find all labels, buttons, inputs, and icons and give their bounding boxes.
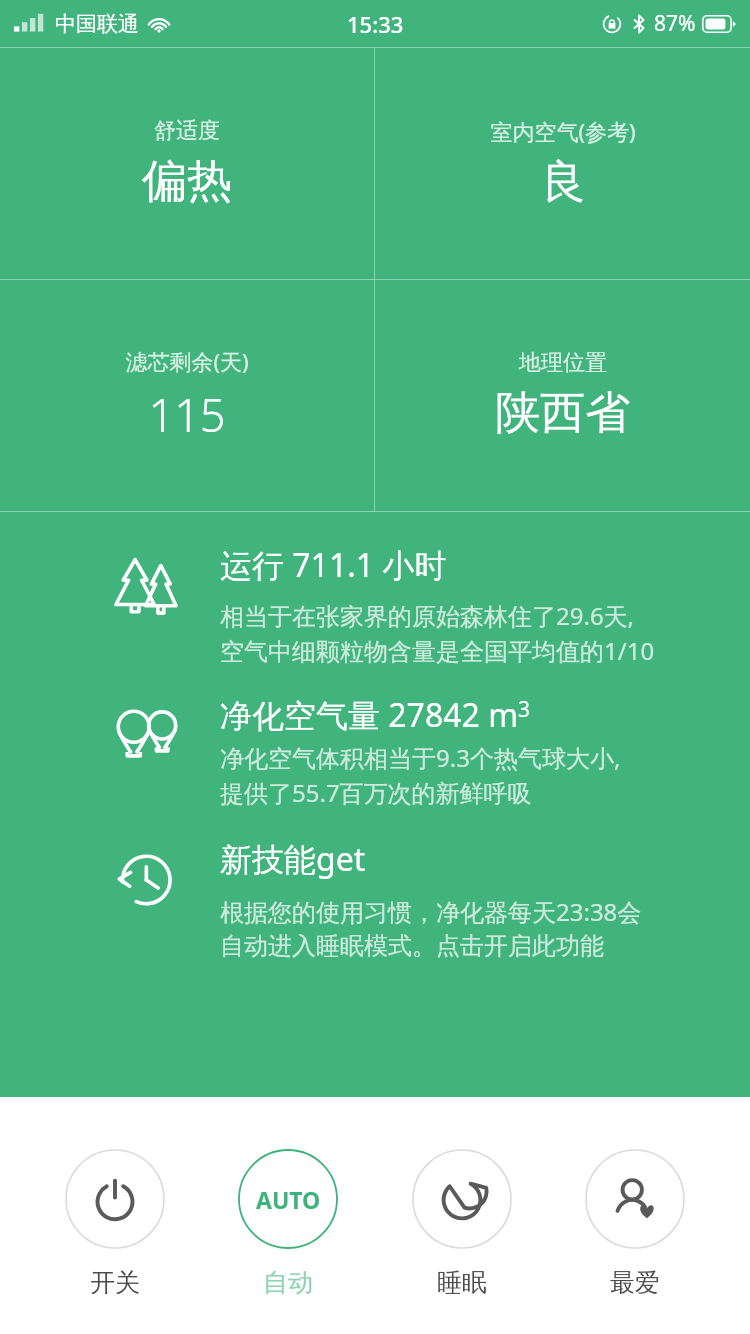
- staticText: 相当于在张家界的原始森林住了29.6天, 空气中细颗粒物含量是全国平均值的1/1…: [220, 599, 655, 667]
- other: Air volume: [112, 703, 178, 769]
- button[interactable]: History: [0, 837, 750, 962]
- other: 最爱: [585, 1149, 685, 1249]
- staticText: 最爱: [610, 1267, 660, 1298]
- staticText: 115: [148, 384, 226, 445]
- staticText: 87%: [654, 9, 696, 38]
- staticText: 陕西省: [495, 385, 630, 442]
- staticText: 睡眠: [437, 1267, 487, 1298]
- staticText: 室内空气(参考): [490, 116, 636, 146]
- staticText: 运行 711.1 小时: [220, 543, 447, 587]
- staticText: 开关: [90, 1267, 140, 1298]
- staticText: 自动: [263, 1267, 313, 1298]
- staticText: 中国联通: [55, 11, 139, 37]
- button[interactable]: Air volume: [0, 693, 750, 809]
- staticText: 净化空气体积相当于9.3个热气球大小, 提供了55.7百万次的新鲜呼吸: [220, 741, 621, 809]
- other: History: [112, 847, 178, 913]
- staticText: 净化空气量 27842 m3: [220, 693, 531, 737]
- staticText: 15:33: [347, 9, 404, 39]
- button[interactable]: 最爱: [577, 1149, 693, 1298]
- button[interactable]: 滤芯剩余(天): [0, 280, 374, 511]
- staticText: 舒适度: [154, 117, 220, 145]
- staticText: 滤芯剩余(天): [125, 346, 249, 376]
- staticText: 良: [541, 154, 586, 211]
- staticText: 偏热: [142, 153, 232, 210]
- button[interactable]: 地理位置: [375, 280, 750, 511]
- other: 睡眠: [412, 1149, 512, 1249]
- staticText: AUTO: [256, 1184, 321, 1215]
- button[interactable]: 开关: [57, 1149, 173, 1298]
- staticText: 新技能get: [220, 837, 366, 881]
- button[interactable]: 睡眠: [404, 1149, 520, 1298]
- button[interactable]: 室内空气(参考): [375, 48, 750, 279]
- other: Forest: [112, 553, 178, 619]
- staticText: 根据您的使用习惯，净化器每天23:38会 自动进入睡眠模式。点击开启此功能: [220, 895, 642, 962]
- staticText: 地理位置: [519, 349, 607, 377]
- button[interactable]: Forest: [0, 543, 750, 667]
- button[interactable]: 舒适度: [0, 48, 374, 279]
- other: 开关: [65, 1149, 165, 1249]
- button[interactable]: AUTO: [230, 1149, 346, 1298]
